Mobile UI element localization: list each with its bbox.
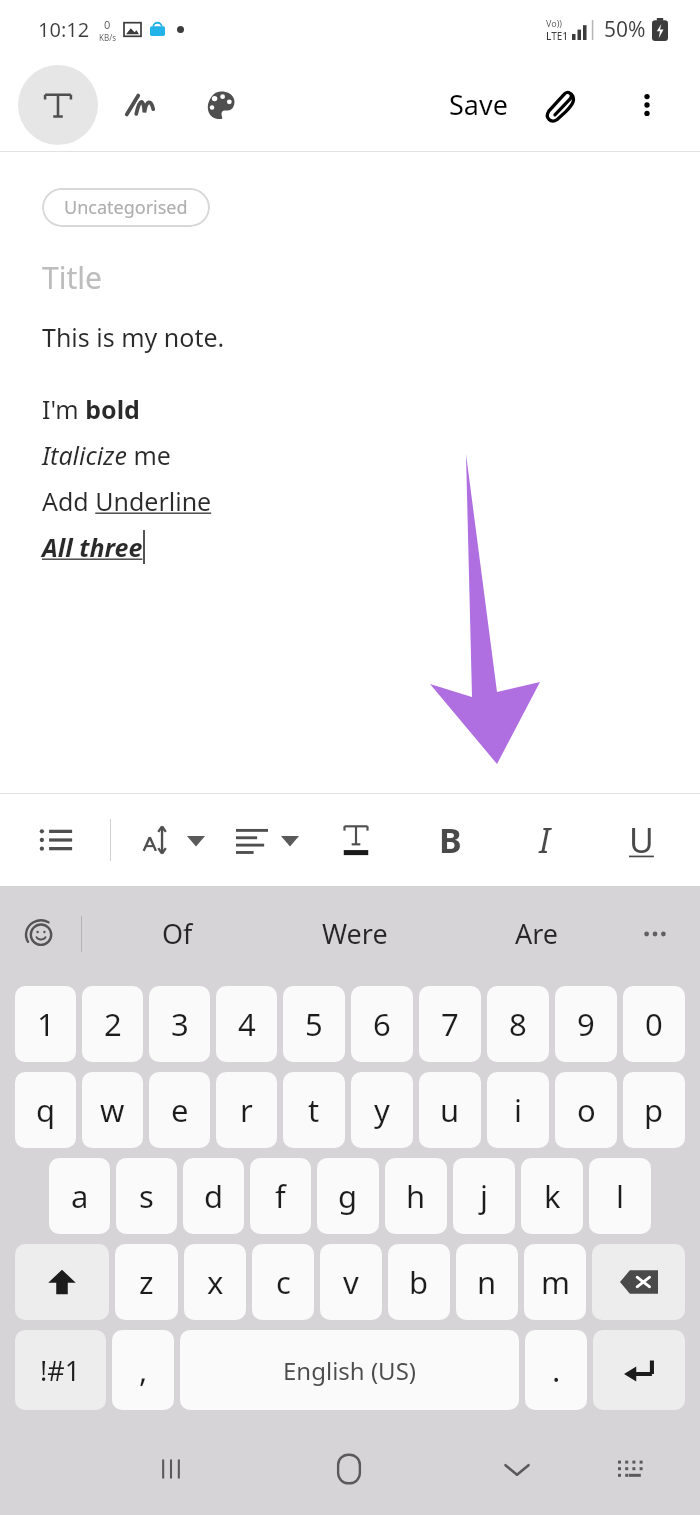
button[interactable]: . xyxy=(525,1330,587,1410)
staticText: 5 xyxy=(305,1003,323,1045)
button[interactable]: Switch keyboard xyxy=(600,1439,660,1499)
button[interactable]: Shift xyxy=(15,1244,109,1320)
staticText: f xyxy=(275,1175,286,1217)
button[interactable]: 4 xyxy=(216,986,277,1062)
staticText: t xyxy=(308,1089,320,1131)
staticText: b xyxy=(409,1261,429,1303)
button[interactable]: k xyxy=(521,1158,583,1234)
button[interactable]: t xyxy=(283,1072,345,1148)
staticText: q xyxy=(36,1089,56,1131)
button[interactable]: Are xyxy=(478,886,596,981)
button[interactable]: y xyxy=(351,1072,413,1148)
button[interactable]: Bullet list xyxy=(26,809,88,871)
button[interactable]: Enter xyxy=(593,1330,685,1410)
button[interactable]: Uncategorised xyxy=(42,188,210,227)
staticText: 10:12 xyxy=(38,16,90,43)
button[interactable]: f xyxy=(250,1158,311,1234)
button[interactable]: r xyxy=(216,1072,277,1148)
button[interactable]: h xyxy=(385,1158,447,1234)
button[interactable]: g xyxy=(317,1158,379,1234)
staticText: Of xyxy=(162,915,193,952)
button[interactable]: 6 xyxy=(351,986,413,1062)
button[interactable]: x xyxy=(184,1244,246,1320)
button[interactable]: Hide keyboard xyxy=(484,1436,550,1502)
button[interactable]: Font size xyxy=(129,809,191,871)
staticText: Uncategorised xyxy=(64,195,188,220)
button[interactable]: More options xyxy=(618,76,676,134)
button[interactable]: Underline xyxy=(610,809,672,871)
button[interactable]: l xyxy=(589,1158,651,1234)
staticText: Italicize me xyxy=(42,438,171,472)
button[interactable]: d xyxy=(183,1158,244,1234)
button[interactable]: Save xyxy=(439,74,518,135)
staticText: s xyxy=(139,1175,154,1217)
button[interactable]: w xyxy=(82,1072,143,1148)
button[interactable]: Text mode xyxy=(18,65,98,145)
button[interactable]: i xyxy=(487,1072,549,1148)
staticText: U xyxy=(629,817,654,863)
button[interactable]: c xyxy=(252,1244,314,1320)
button[interactable]: 3 xyxy=(149,986,210,1062)
staticText: 8 xyxy=(509,1003,527,1045)
button[interactable]: More suggestions xyxy=(630,909,680,959)
button[interactable]: English (US) xyxy=(180,1330,519,1410)
button[interactable]: 7 xyxy=(419,986,481,1062)
button[interactable]: 2 xyxy=(82,986,143,1062)
button[interactable]: Emoji xyxy=(14,907,68,961)
staticText: d xyxy=(204,1175,224,1217)
staticText: Are xyxy=(515,915,559,952)
button[interactable]: u xyxy=(419,1072,481,1148)
staticText: y xyxy=(374,1089,390,1131)
button[interactable]: Backspace xyxy=(592,1244,685,1320)
button[interactable]: Alignment xyxy=(221,809,283,871)
button[interactable]: Italic xyxy=(514,809,576,871)
staticText: 50% xyxy=(604,15,646,44)
button[interactable]: v xyxy=(320,1244,382,1320)
button[interactable]: j xyxy=(453,1158,515,1234)
button[interactable]: o xyxy=(555,1072,617,1148)
button[interactable]: b xyxy=(388,1244,450,1320)
button[interactable]: p xyxy=(623,1072,685,1148)
button[interactable]: Expand xyxy=(272,822,308,858)
staticText: h xyxy=(406,1175,426,1217)
button[interactable]: 0 xyxy=(623,986,685,1062)
staticText: 0 xyxy=(104,17,111,32)
button[interactable]: Text colour xyxy=(325,809,387,871)
button[interactable]: Recents xyxy=(138,1436,204,1502)
staticText: n xyxy=(477,1261,497,1303)
button[interactable]: Of xyxy=(118,886,236,981)
button[interactable]: s xyxy=(116,1158,177,1234)
staticText: 2 xyxy=(104,1003,122,1045)
button[interactable]: q xyxy=(15,1072,76,1148)
staticText: I xyxy=(539,817,551,863)
button[interactable]: Expand xyxy=(178,822,214,858)
button[interactable]: a xyxy=(49,1158,110,1234)
button[interactable]: m xyxy=(524,1244,586,1320)
staticText: Title xyxy=(42,257,102,298)
button[interactable]: e xyxy=(149,1072,210,1148)
button[interactable]: Palette xyxy=(190,74,252,136)
staticText: p xyxy=(644,1089,664,1131)
staticText: z xyxy=(139,1261,154,1303)
button[interactable]: !#1 xyxy=(15,1330,106,1410)
button[interactable]: z xyxy=(115,1244,178,1320)
staticText: !#1 xyxy=(40,1352,81,1389)
button[interactable]: Were xyxy=(296,886,414,981)
button[interactable]: Bold xyxy=(419,809,481,871)
staticText: . xyxy=(552,1349,561,1391)
staticText: English (US) xyxy=(283,1354,417,1387)
button[interactable]: Home xyxy=(314,1434,384,1504)
staticText: a xyxy=(71,1175,89,1217)
button[interactable]: Attach xyxy=(530,74,592,136)
button[interactable]: 5 xyxy=(283,986,345,1062)
staticText: LTE1 xyxy=(546,29,569,43)
button[interactable]: Handwriting xyxy=(110,74,172,136)
button[interactable]: , xyxy=(112,1330,174,1410)
staticText: 4 xyxy=(238,1003,256,1045)
staticText: 7 xyxy=(441,1003,459,1045)
button[interactable]: 9 xyxy=(555,986,617,1062)
staticText: x xyxy=(207,1261,224,1303)
button[interactable]: n xyxy=(456,1244,518,1320)
button[interactable]: 8 xyxy=(487,986,549,1062)
button[interactable]: 1 xyxy=(15,986,76,1062)
